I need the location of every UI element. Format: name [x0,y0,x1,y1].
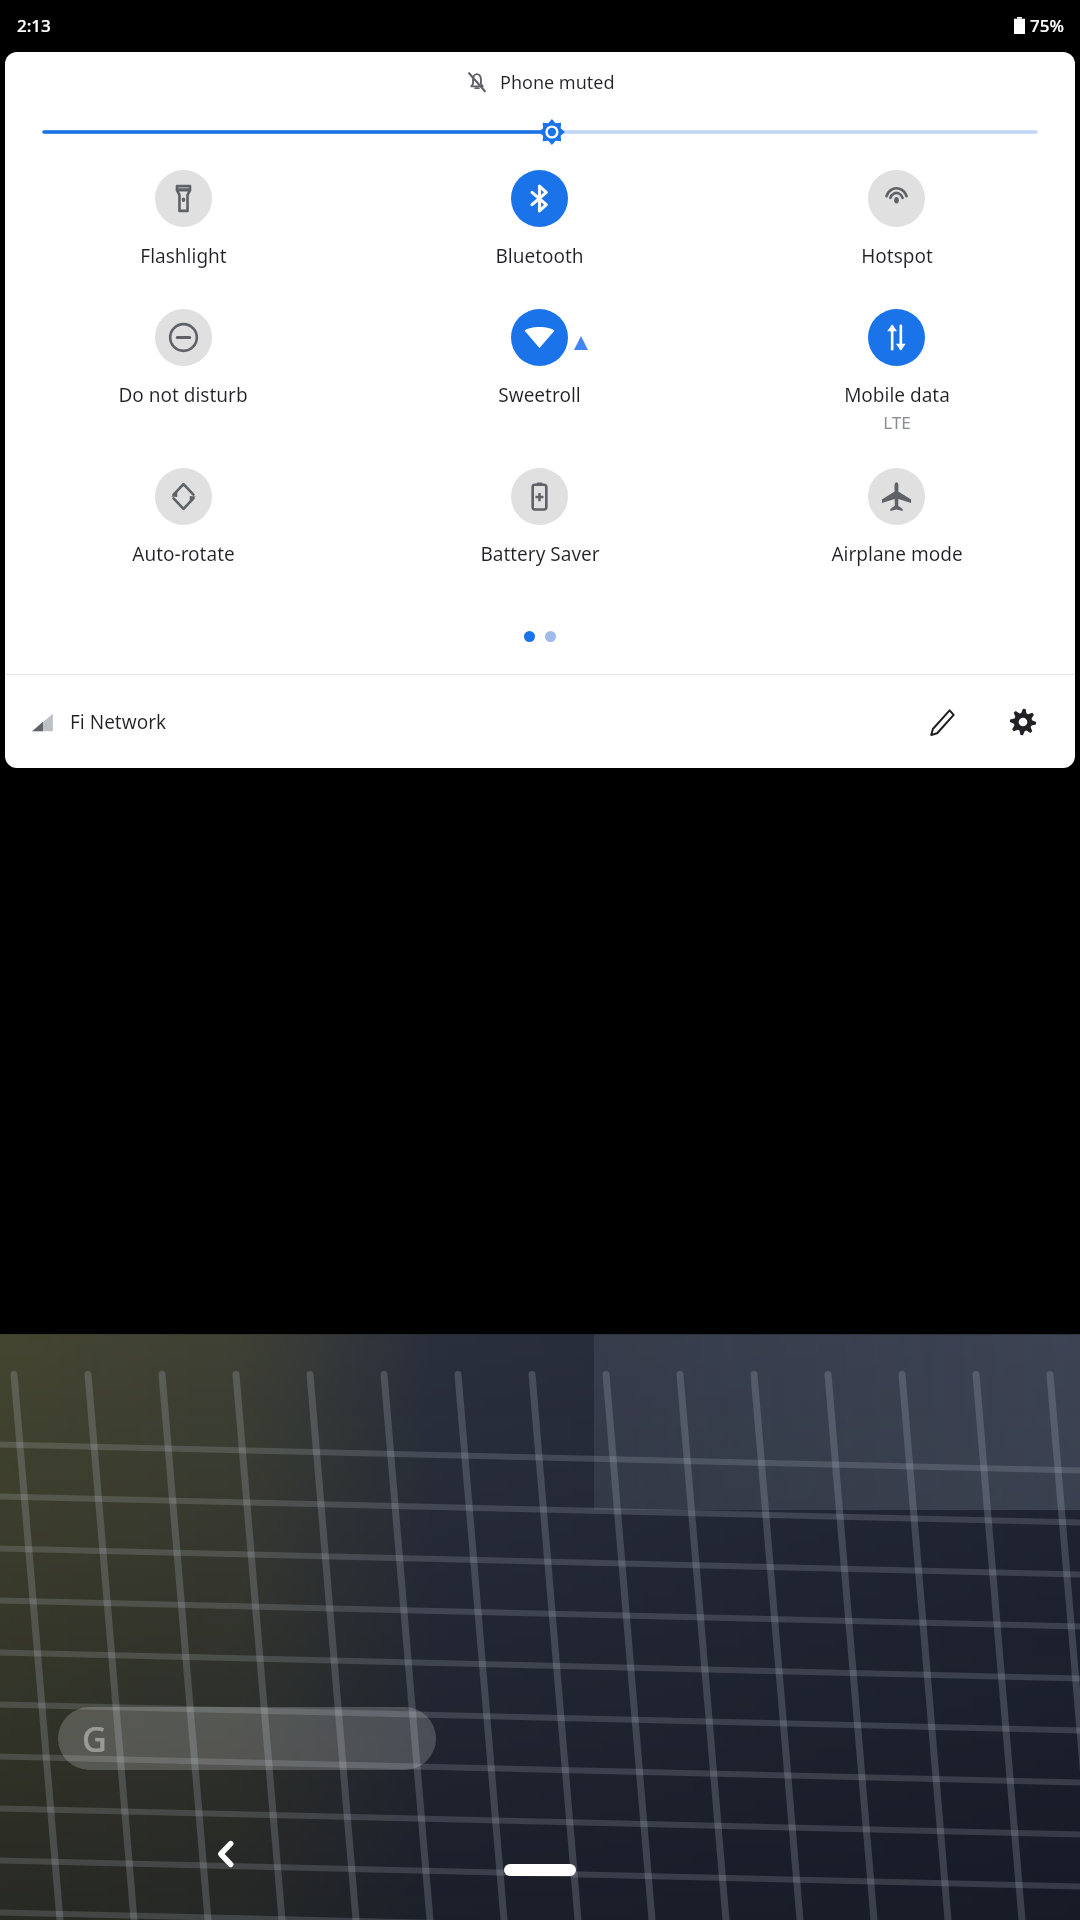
staticText: LTE [883,411,911,434]
button[interactable]: Back [200,1828,252,1880]
button[interactable]: Fi Network [31,709,167,735]
staticText: Flashlight [140,243,227,269]
button[interactable]: Settings [997,696,1049,748]
button[interactable]: Google search [58,1707,436,1770]
button[interactable]: Mobile data [718,305,1075,438]
staticText: Phone muted [500,70,615,95]
button[interactable]: Do not disturb [5,305,361,412]
staticText: Airplane mode [831,541,963,567]
button[interactable]: Home [504,1864,576,1876]
staticText: Sweetroll [498,382,581,408]
staticText: Do not disturb [118,382,248,408]
button[interactable]: Sweetroll [361,305,718,412]
button[interactable]: Hotspot [718,166,1075,273]
staticText: Bluetooth [495,243,584,269]
button[interactable]: Bluetooth [361,166,718,273]
button[interactable]: Edit tiles [915,696,967,748]
staticText: Battery Saver [480,541,600,567]
staticText: 2:13 [17,14,51,37]
button[interactable]: Flashlight [5,166,361,273]
button[interactable]: Battery Saver [361,464,718,571]
staticText: Auto-rotate [132,541,235,567]
button[interactable]: Brightness [5,112,1075,152]
staticText: Mobile data [844,382,950,408]
button[interactable]: Auto-rotate [5,464,361,571]
staticText: Fi Network [70,709,167,735]
staticText: G [82,1716,107,1762]
staticText: 75% [1030,14,1064,37]
button[interactable]: Airplane mode [718,464,1075,571]
staticText: Hotspot [861,243,933,269]
